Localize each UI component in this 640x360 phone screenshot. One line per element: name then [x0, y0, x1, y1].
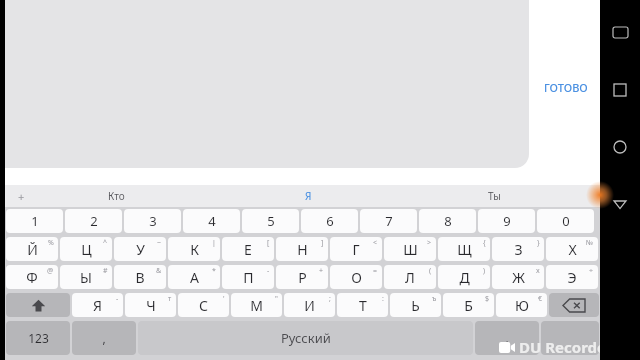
button[interactable]: 8: [419, 209, 476, 233]
button[interactable]: Я: [72, 293, 123, 317]
button[interactable]: ,: [72, 321, 136, 355]
staticText: Ч: [146, 296, 156, 315]
staticText: Х: [568, 240, 577, 259]
button[interactable]: 5: [242, 209, 299, 233]
staticText: .: [505, 330, 509, 346]
staticText: ;: [329, 294, 331, 304]
staticText: О: [351, 268, 362, 287]
button[interactable]: Н: [276, 237, 328, 261]
button[interactable]: А: [168, 265, 220, 289]
button[interactable]: Ч: [125, 293, 176, 317]
button[interactable]: .: [475, 321, 539, 355]
staticText: &: [156, 266, 162, 276]
button[interactable]: Back: [609, 193, 631, 215]
staticText: =: [373, 266, 378, 276]
staticText: 4: [208, 212, 216, 230]
staticText: -: [116, 294, 119, 304]
button[interactable]: 7: [360, 209, 417, 233]
button[interactable]: М: [231, 293, 282, 317]
staticText: ": [275, 294, 278, 304]
staticText: 5: [267, 212, 275, 230]
button[interactable]: Э: [546, 265, 598, 289]
button[interactable]: 4: [183, 209, 240, 233]
staticText: 1: [31, 212, 39, 230]
staticText: <: [373, 238, 378, 248]
button[interactable]: В: [114, 265, 166, 289]
button[interactable]: 3: [124, 209, 181, 233]
button[interactable]: [541, 321, 599, 355]
staticText: ^: [103, 238, 108, 248]
staticText: -: [267, 266, 270, 276]
staticText: У: [136, 240, 145, 259]
button[interactable]: Й: [6, 237, 58, 261]
staticText: 6: [326, 212, 334, 230]
button[interactable]: 0: [537, 209, 594, 233]
button[interactable]: Ш: [384, 237, 436, 261]
staticText: ГОТОВО: [544, 80, 588, 95]
button[interactable]: Ю: [496, 293, 547, 317]
button[interactable]: Ж: [492, 265, 544, 289]
staticText: Щ: [457, 240, 472, 259]
staticText: Ц: [81, 240, 92, 259]
button[interactable]: ГОТОВО: [533, 75, 599, 99]
button[interactable]: Ц: [60, 237, 112, 261]
button[interactable]: И: [284, 293, 335, 317]
staticText: 7: [385, 212, 393, 230]
button[interactable]: 1: [6, 209, 63, 233]
button[interactable]: Л: [384, 265, 436, 289]
button[interactable]: 6: [301, 209, 358, 233]
staticText: П: [243, 268, 254, 287]
button[interactable]: Ы: [60, 265, 112, 289]
staticText: Р: [298, 268, 307, 287]
staticText: З: [514, 240, 523, 259]
staticText: К: [190, 240, 199, 259]
staticText: >: [427, 238, 432, 248]
button[interactable]: О: [330, 265, 382, 289]
staticText: 8: [444, 212, 452, 230]
button[interactable]: Ф: [6, 265, 58, 289]
button[interactable]: Hide keyboard: [609, 21, 631, 43]
button[interactable]: 9: [478, 209, 535, 233]
staticText: ]: [321, 238, 324, 248]
staticText: Ы: [80, 268, 92, 287]
staticText: %: [48, 238, 54, 248]
button[interactable]: Е: [222, 237, 274, 261]
button[interactable]: С: [178, 293, 229, 317]
staticText: Ь: [411, 296, 420, 315]
staticText: Русский: [281, 329, 331, 347]
button[interactable]: 2: [65, 209, 122, 233]
staticText: Ты: [488, 189, 501, 203]
button[interactable]: К: [168, 237, 220, 261]
button[interactable]: Г: [330, 237, 382, 261]
button[interactable]: У: [114, 237, 166, 261]
staticText: ъ: [432, 294, 437, 304]
staticText: €: [538, 294, 543, 304]
button[interactable]: Shift: [6, 293, 70, 317]
button[interactable]: Ь: [390, 293, 441, 317]
staticText: В: [135, 268, 145, 287]
button[interactable]: Щ: [438, 237, 490, 261]
button[interactable]: З: [492, 237, 544, 261]
button[interactable]: П: [222, 265, 274, 289]
button[interactable]: Х: [546, 237, 598, 261]
button[interactable]: 123: [6, 321, 70, 355]
staticText: 9: [503, 212, 511, 230]
staticText: т: [168, 294, 172, 304]
staticText: Л: [405, 268, 415, 287]
staticText: Т: [359, 296, 367, 315]
staticText: [: [267, 238, 270, 248]
staticText: С: [199, 296, 208, 315]
staticText: Д: [459, 268, 470, 287]
staticText: Б: [464, 296, 473, 315]
button[interactable]: Русский: [138, 321, 473, 355]
button[interactable]: Д: [438, 265, 490, 289]
button[interactable]: Backspace: [549, 293, 599, 317]
button[interactable]: Б: [443, 293, 494, 317]
button[interactable]: Recent apps: [609, 79, 631, 101]
button[interactable]: Р: [276, 265, 328, 289]
button[interactable]: Т: [337, 293, 388, 317]
staticText: Е: [244, 240, 252, 259]
staticText: {: [483, 238, 486, 248]
button[interactable]: Home: [609, 136, 631, 158]
